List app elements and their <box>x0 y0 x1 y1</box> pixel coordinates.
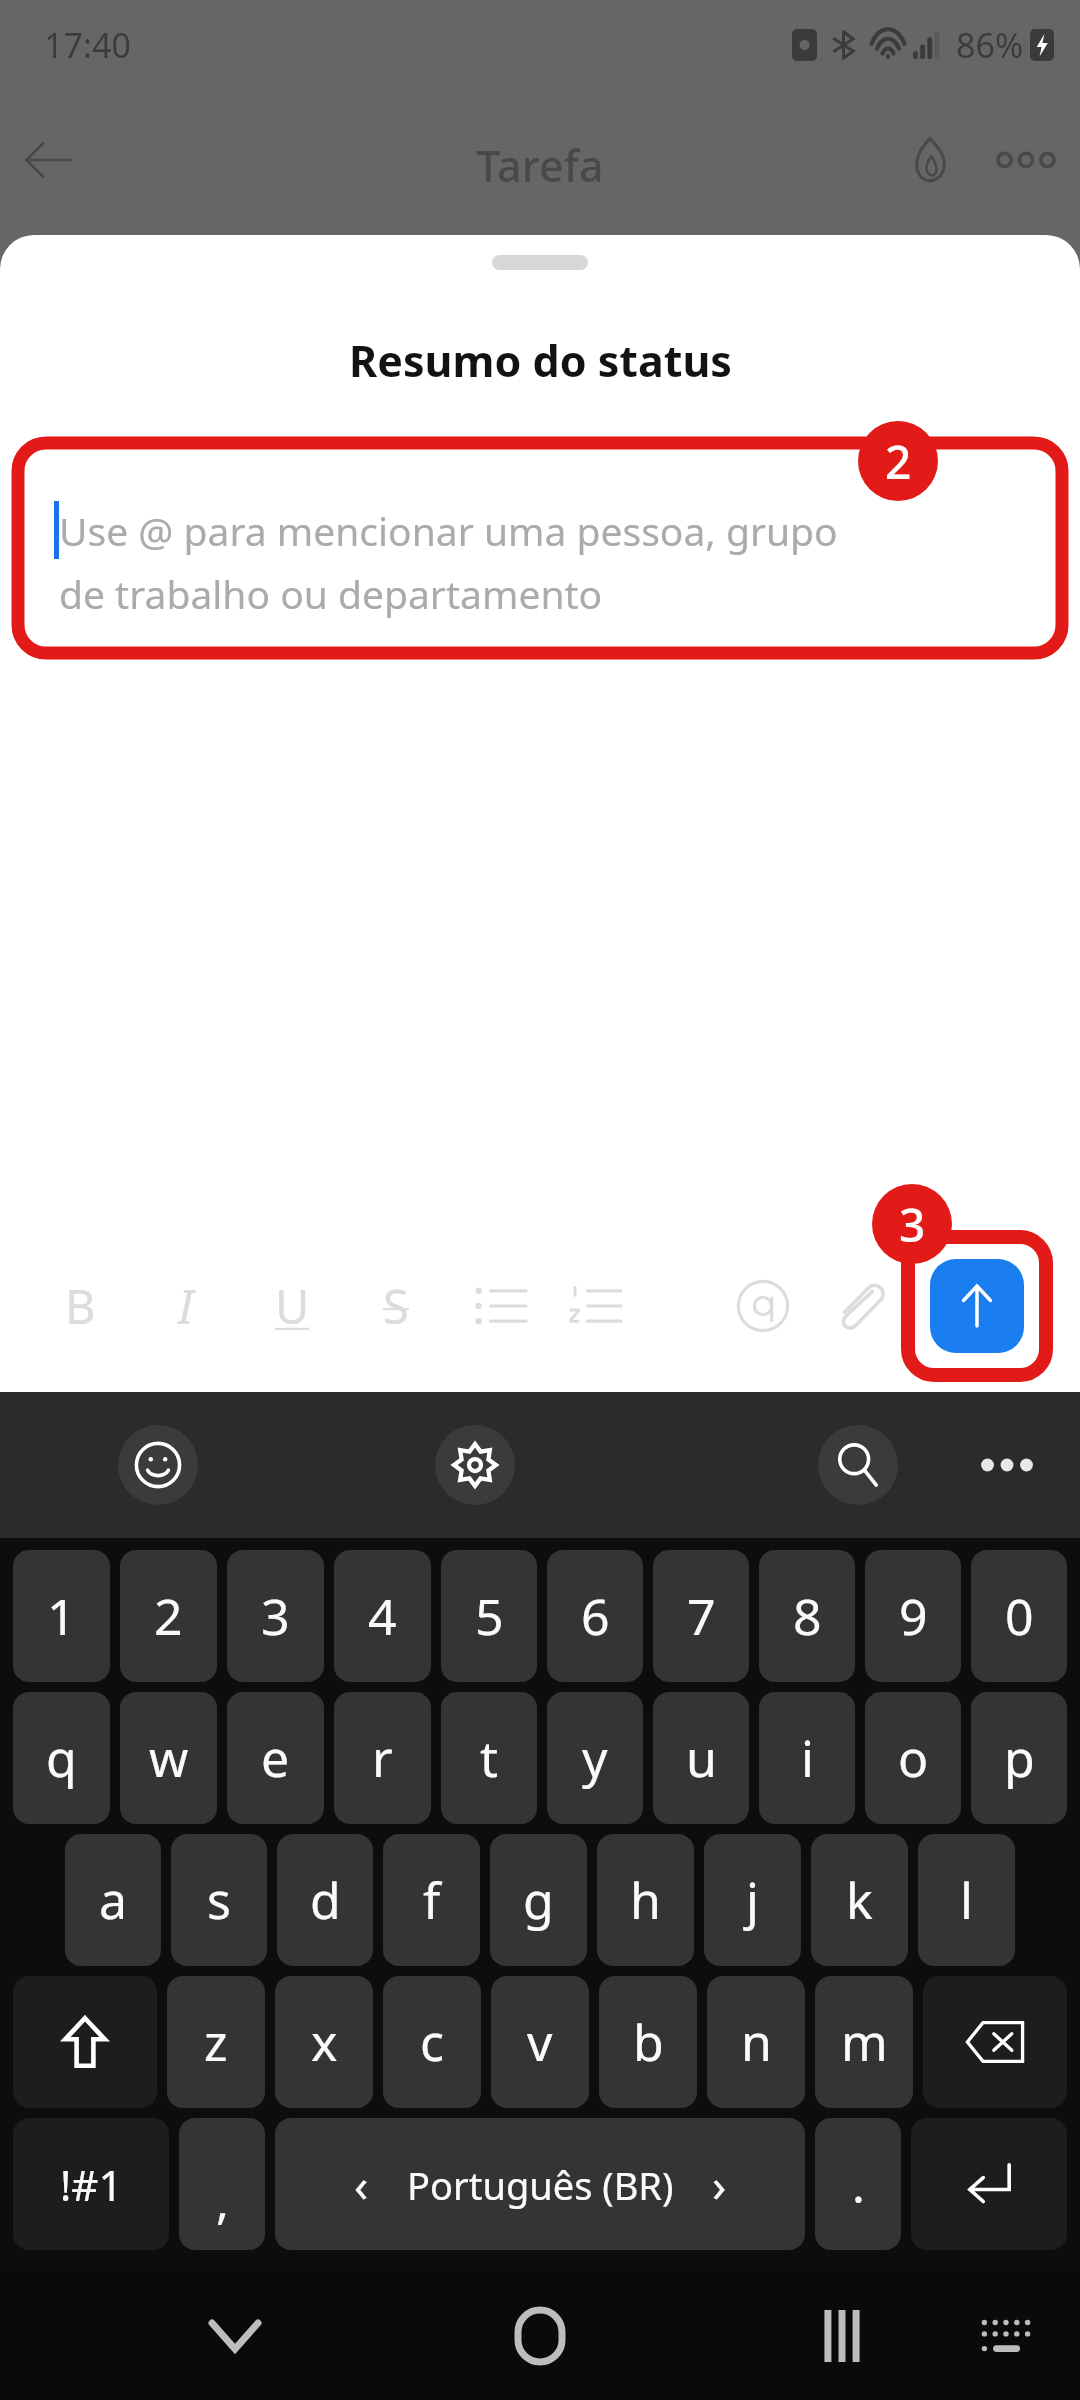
staticText: 8 <box>793 1582 822 1650</box>
button[interactable]: Switch keyboard <box>958 2288 1054 2384</box>
button[interactable]: More <box>970 1428 1044 1502</box>
staticText: Tarefa <box>476 136 604 195</box>
staticText: j <box>746 1866 759 1934</box>
button[interactable]: j <box>704 1834 801 1966</box>
staticText: n <box>741 2008 772 2076</box>
button[interactable]: g <box>490 1834 587 1966</box>
staticText: 2 <box>154 1582 183 1650</box>
button[interactable]: , <box>179 2118 265 2250</box>
button[interactable]: 3 <box>227 1550 324 1682</box>
button[interactable]: Send <box>930 1259 1024 1353</box>
button[interactable]: n <box>707 1976 805 2108</box>
button[interactable]: a <box>65 1834 161 1966</box>
staticText: 5 <box>475 1582 504 1650</box>
button[interactable]: U <box>260 1274 324 1338</box>
staticText: p <box>1004 1724 1035 1792</box>
button[interactable]: 7 <box>653 1550 749 1682</box>
button[interactable]: Shift <box>13 1976 157 2108</box>
button[interactable]: i <box>759 1692 855 1824</box>
button[interactable]: m <box>815 1976 913 2108</box>
button[interactable]: 1 <box>13 1550 110 1682</box>
button[interactable]: 4 <box>334 1550 431 1682</box>
button[interactable]: u <box>653 1692 749 1824</box>
staticText: de trabalho ou departamento <box>59 567 603 620</box>
button[interactable]: r <box>334 1692 431 1824</box>
staticText: . <box>852 2152 865 2217</box>
button[interactable]: Space, Português (BR) <box>275 2118 805 2250</box>
staticText: v <box>527 2008 553 2076</box>
button[interactable]: d <box>277 1834 373 1966</box>
button[interactable]: q <box>13 1692 110 1824</box>
staticText: w <box>149 1724 189 1792</box>
button[interactable]: Attach file <box>822 1269 896 1343</box>
staticText: B <box>65 1274 96 1338</box>
button[interactable]: S <box>364 1274 428 1338</box>
staticText: 86% <box>956 22 1024 68</box>
button[interactable]: Bulleted list <box>468 1273 534 1339</box>
button[interactable]: 2 <box>120 1550 217 1682</box>
button[interactable]: e <box>227 1692 324 1824</box>
button[interactable]: Enter <box>911 2118 1067 2250</box>
button[interactable]: Recent apps <box>794 2288 890 2384</box>
staticText: m <box>841 2008 888 2076</box>
staticText: ‹ <box>354 2153 369 2216</box>
button[interactable]: Mention <box>726 1269 800 1343</box>
staticText: 9 <box>899 1582 928 1650</box>
staticText: S <box>383 1274 409 1338</box>
staticText: t <box>480 1724 499 1792</box>
button[interactable]: p <box>971 1692 1067 1824</box>
staticText: z <box>204 2008 228 2076</box>
staticText: x <box>311 2008 338 2076</box>
staticText: i <box>801 1724 814 1792</box>
staticText: c <box>420 2008 444 2076</box>
button[interactable]: Numbered list <box>562 1273 628 1339</box>
button[interactable]: w <box>120 1692 217 1824</box>
button[interactable]: Home <box>492 2288 588 2384</box>
button[interactable]: c <box>383 1976 481 2108</box>
button[interactable]: 5 <box>441 1550 537 1682</box>
staticText: Português (BR) <box>407 2159 674 2211</box>
staticText: 7 <box>687 1582 716 1650</box>
button[interactable]: v <box>491 1976 589 2108</box>
staticText: › <box>712 2153 727 2216</box>
button[interactable]: s <box>171 1834 267 1966</box>
button[interactable]: . <box>815 2118 901 2250</box>
staticText: 3 <box>261 1582 290 1650</box>
button[interactable]: Backspace <box>923 1976 1067 2108</box>
staticText: a <box>99 1866 128 1934</box>
button[interactable]: Search <box>818 1425 898 1505</box>
staticText: !#1 <box>60 2156 123 2213</box>
button[interactable]: B <box>48 1274 112 1338</box>
button[interactable]: o <box>865 1692 961 1824</box>
button[interactable]: f <box>383 1834 480 1966</box>
button[interactable]: 0 <box>971 1550 1067 1682</box>
button[interactable]: k <box>811 1834 908 1966</box>
button[interactable]: 6 <box>547 1550 643 1682</box>
button[interactable]: y <box>547 1692 643 1824</box>
button[interactable]: !#1 <box>13 2118 169 2250</box>
button[interactable]: Use @ para mencionar uma pessoa, grupo <box>18 443 1062 653</box>
button[interactable]: Back <box>0 112 96 208</box>
staticText: 2 <box>885 430 912 493</box>
button[interactable]: Keyboard settings <box>435 1425 515 1505</box>
staticText: 4 <box>368 1582 397 1650</box>
button[interactable]: 9 <box>865 1550 961 1682</box>
staticText: U <box>275 1274 310 1338</box>
button[interactable]: Emoji <box>118 1425 198 1505</box>
button[interactable]: b <box>599 1976 697 2108</box>
button[interactable]: More options <box>978 112 1074 208</box>
button[interactable]: h <box>597 1834 694 1966</box>
staticText: s <box>207 1866 231 1934</box>
button[interactable]: Hide keyboard <box>187 2288 283 2384</box>
staticText: 0 <box>1005 1582 1034 1650</box>
button[interactable]: t <box>441 1692 537 1824</box>
staticText: g <box>523 1866 554 1934</box>
button[interactable]: Urgent <box>882 112 978 208</box>
button[interactable]: z <box>167 1976 265 2108</box>
button[interactable]: I <box>154 1274 218 1338</box>
button[interactable]: l <box>918 1834 1015 1966</box>
button[interactable]: 8 <box>759 1550 855 1682</box>
button[interactable]: x <box>275 1976 373 2108</box>
staticText: u <box>686 1724 717 1792</box>
staticText: Resumo do status <box>349 331 732 390</box>
